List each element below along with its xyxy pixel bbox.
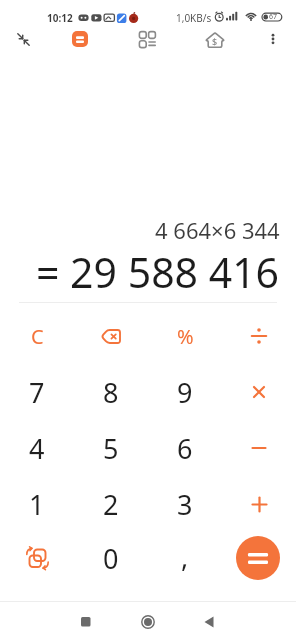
staticText: 5 [103,430,119,467]
button[interactable]: 8 [74,364,148,420]
button[interactable]: 1 [0,476,74,532]
staticText: 10:12 [47,11,73,25]
staticText: 8 [103,374,119,411]
button[interactable]: , [148,530,222,586]
button[interactable] [0,530,74,586]
staticText: 9 [177,374,193,411]
button[interactable] [222,364,296,420]
staticText: 4 [29,430,45,467]
button[interactable]: 2 [74,476,148,532]
button[interactable] [222,420,296,476]
button[interactable]: 0 [74,530,148,586]
button[interactable]: % [148,308,222,364]
button[interactable]: 7 [0,364,74,420]
button[interactable]: $ [202,27,227,52]
staticText: 4 664×6 344 [155,215,280,243]
button[interactable] [135,27,160,52]
staticText: 2 [103,486,119,523]
button[interactable]: 6 [148,420,222,476]
button[interactable]: 4 [0,420,74,476]
button[interactable]: C [0,308,74,364]
staticText: $ [212,35,218,47]
staticText: 3 [177,486,193,523]
button[interactable] [128,602,168,641]
button[interactable] [10,27,36,51]
staticText: 6 [177,430,193,467]
button[interactable]: 5 [74,420,148,476]
button[interactable] [189,602,229,641]
staticText: 0 [103,540,119,577]
staticText: C [31,323,44,350]
button[interactable]: 3 [148,476,222,532]
staticText: , [181,538,189,575]
button[interactable]: 9 [148,364,222,420]
staticText: = 29 588 416 [36,244,280,300]
button[interactable] [67,26,92,51]
staticText: 67 [269,12,278,22]
staticText: % [177,323,194,350]
button[interactable] [74,308,148,364]
button[interactable] [222,308,296,364]
button[interactable] [66,602,106,641]
button[interactable] [236,536,280,580]
button[interactable] [261,27,285,51]
staticText: 7 [29,374,45,411]
staticText: 1,0KB/s [176,11,212,25]
button[interactable] [222,476,296,532]
staticText: 1 [29,486,45,523]
